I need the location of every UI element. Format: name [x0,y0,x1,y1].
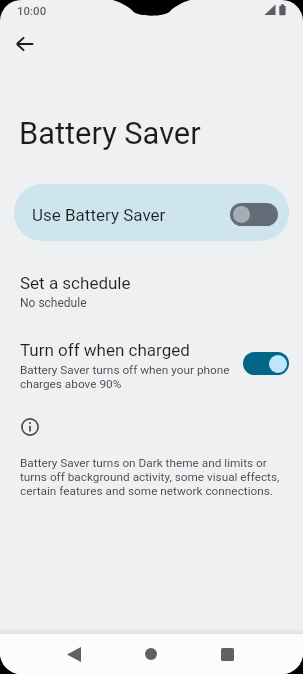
staticText: Battery Saver [19,115,201,151]
button[interactable]: Back [52,634,96,674]
staticText: Turn off when charged [20,340,190,360]
button[interactable]: Home [129,634,173,674]
staticText: Use Battery Saver [32,205,166,225]
button[interactable]: Set a schedule [0,269,303,318]
staticText: 10:00 [17,4,47,17]
button[interactable]: Turn off when charged [0,336,303,399]
button[interactable]: Use Battery Saver toggle [230,203,278,226]
button[interactable]: Use Battery Saver [14,184,289,241]
staticText: Set a schedule [20,273,131,293]
button[interactable]: Recent apps [205,634,249,674]
staticText: Battery Saver turns on Dark theme and li… [20,456,283,498]
button[interactable]: Back [5,24,45,64]
button[interactable]: Turn off when charged toggle [243,352,289,375]
staticText: Battery Saver turns off when your phone … [20,363,235,391]
staticText: No schedule [20,296,87,310]
